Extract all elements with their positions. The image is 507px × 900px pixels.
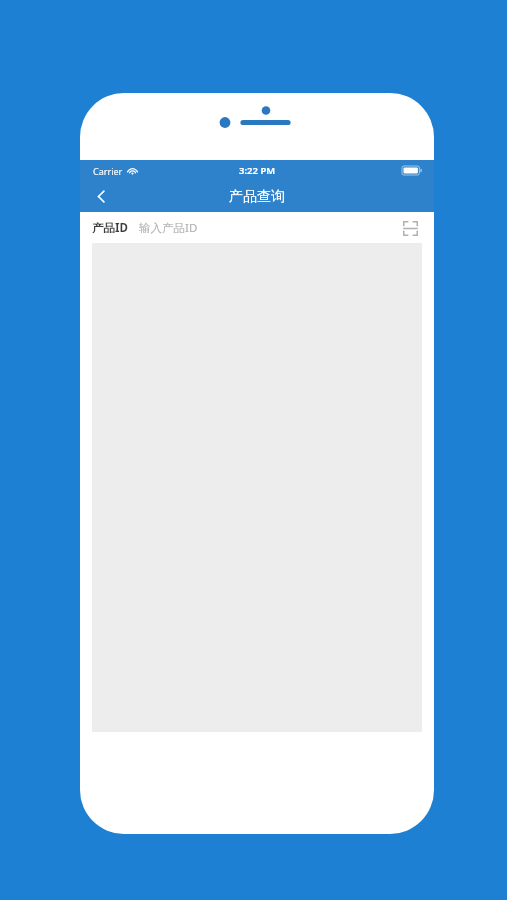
- staticText: 3:22 PM: [239, 164, 276, 177]
- staticText: 产品ID: [92, 220, 128, 236]
- button[interactable]: Scan barcode: [397, 215, 423, 241]
- button[interactable]: Back: [80, 181, 122, 212]
- staticText: 产品查询: [229, 188, 285, 206]
- staticText: Carrier: [93, 165, 123, 177]
- staticText: 输入产品ID: [139, 220, 198, 236]
- button[interactable]: 输入产品ID: [139, 212, 397, 243]
